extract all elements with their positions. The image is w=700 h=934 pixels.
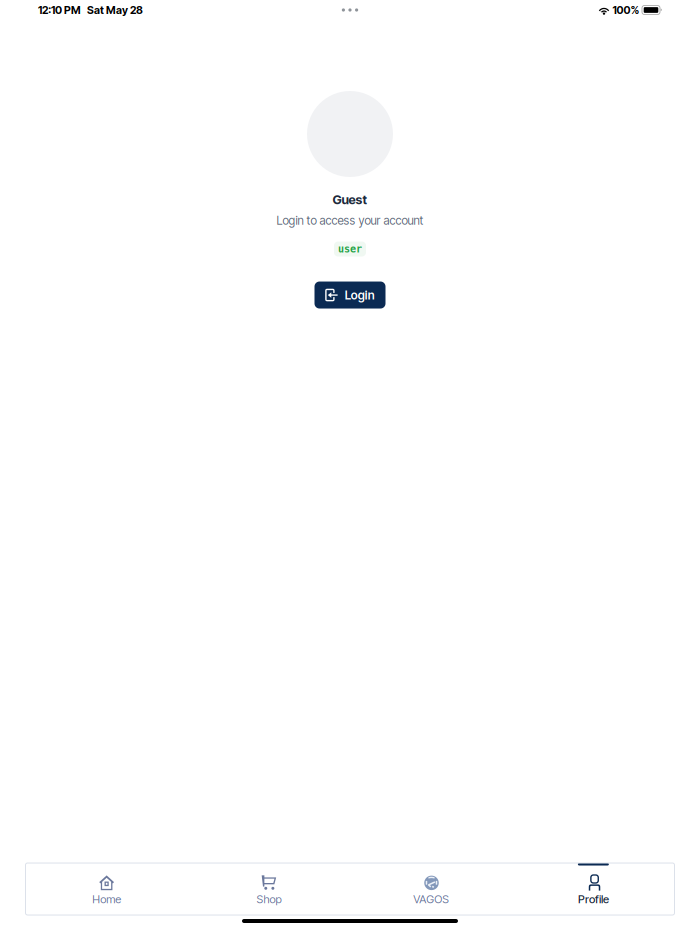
button[interactable]: Shop [188,863,350,915]
staticText: user [338,243,362,255]
button[interactable]: Home [25,863,188,915]
staticText: Login [345,288,375,302]
staticText: Guest [332,192,367,207]
staticText: Login to access your account [276,213,423,227]
staticText: Profile [578,892,609,906]
staticText: VAGOS [413,892,449,906]
staticText: 12:10 PM Sat May 28 [38,3,143,17]
staticText: Shop [256,892,281,906]
staticText: 100% [612,3,639,16]
button[interactable]: Login [314,281,385,308]
button[interactable]: Profile [512,863,674,915]
staticText: Home [92,892,121,906]
button[interactable]: VAGOS [350,863,512,915]
